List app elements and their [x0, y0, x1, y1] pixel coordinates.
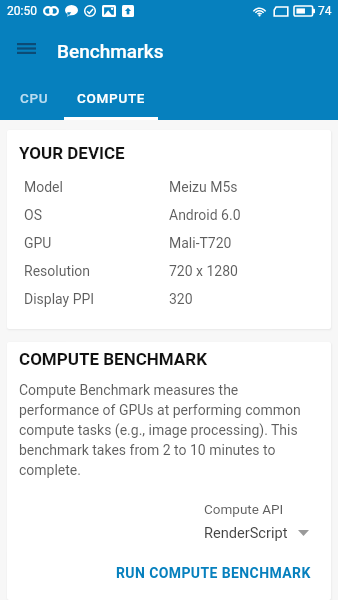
staticText: Model	[24, 179, 63, 195]
button[interactable]: RUN COMPUTE BENCHMARK	[108, 559, 319, 587]
staticText: COMPUTE BENCHMARK	[19, 349, 207, 369]
staticText: 320	[169, 291, 193, 307]
staticText: Compute Benchmark measures the performan…	[19, 382, 319, 479]
staticText: Compute API	[204, 501, 284, 517]
staticText: COMPUTE	[77, 90, 146, 106]
staticText: GPU	[24, 235, 52, 251]
button[interactable]: Open navigation drawer	[0, 22, 52, 75]
button[interactable]: RenderScript	[204, 524, 309, 541]
staticText: Meizu M5s	[169, 179, 238, 195]
staticText: 20:50	[7, 4, 37, 18]
staticText: RenderScript	[204, 524, 288, 541]
staticText: OS	[24, 207, 42, 223]
staticText: Benchmarks	[57, 40, 164, 62]
staticText: Resolution	[24, 263, 91, 279]
staticText: CPU	[20, 90, 49, 106]
staticText: 74	[318, 4, 332, 18]
staticText: YOUR DEVICE	[19, 143, 125, 163]
staticText: Display PPI	[24, 291, 95, 307]
button[interactable]: COMPUTE	[64, 75, 158, 120]
staticText: RUN COMPUTE BENCHMARK	[116, 565, 311, 581]
staticText: Mali-T720	[169, 235, 232, 251]
staticText: Android 6.0	[169, 207, 241, 223]
button[interactable]: CPU	[4, 75, 64, 120]
staticText: 720 x 1280	[169, 263, 238, 279]
